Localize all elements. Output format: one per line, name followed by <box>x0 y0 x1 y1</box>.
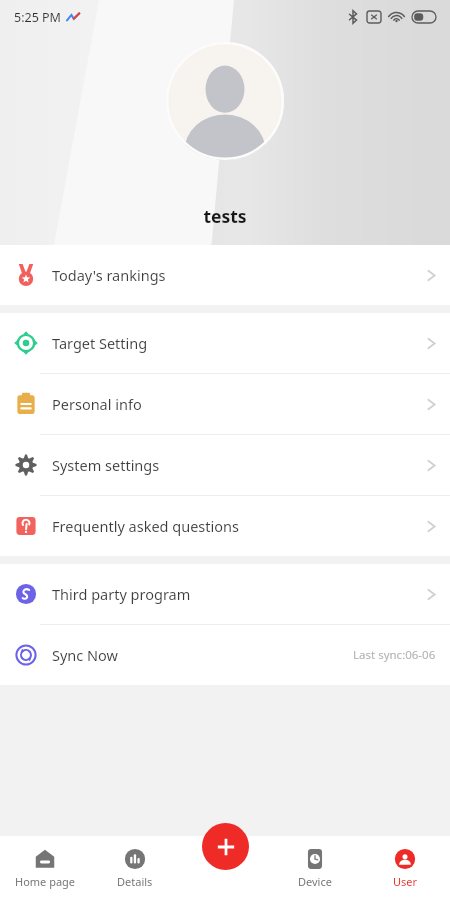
staticText: Personal info <box>52 394 142 414</box>
staticText: Target Setting <box>52 333 148 353</box>
button[interactable]: User <box>360 836 450 900</box>
button[interactable]: Today's rankings <box>0 245 450 305</box>
button[interactable]: Third party program <box>0 564 450 624</box>
staticText: Home page <box>15 874 76 889</box>
staticText: Third party program <box>52 584 191 604</box>
staticText: Details <box>117 874 153 889</box>
button[interactable]: Target Setting <box>0 313 450 373</box>
button[interactable]: Add <box>202 823 249 870</box>
button[interactable]: Profile photo <box>166 42 284 160</box>
staticText: Today's rankings <box>52 265 166 285</box>
button[interactable]: Frequently asked questions <box>0 496 450 556</box>
staticText: Device <box>298 874 332 889</box>
staticText: User <box>393 874 418 889</box>
staticText: System settings <box>52 455 160 475</box>
button[interactable]: Home page <box>0 836 90 900</box>
staticText: Last sync:06-06 <box>353 647 436 663</box>
staticText: tests <box>203 204 247 228</box>
button[interactable]: Details <box>90 836 180 900</box>
staticText: Frequently asked questions <box>52 516 239 536</box>
button[interactable]: Personal info <box>0 374 450 434</box>
button[interactable]: System settings <box>0 435 450 495</box>
button[interactable]: Device <box>270 836 360 900</box>
staticText: 5:25 PM <box>14 9 61 26</box>
button[interactable]: Sync Now <box>0 625 450 685</box>
staticText: Sync Now <box>52 645 118 665</box>
